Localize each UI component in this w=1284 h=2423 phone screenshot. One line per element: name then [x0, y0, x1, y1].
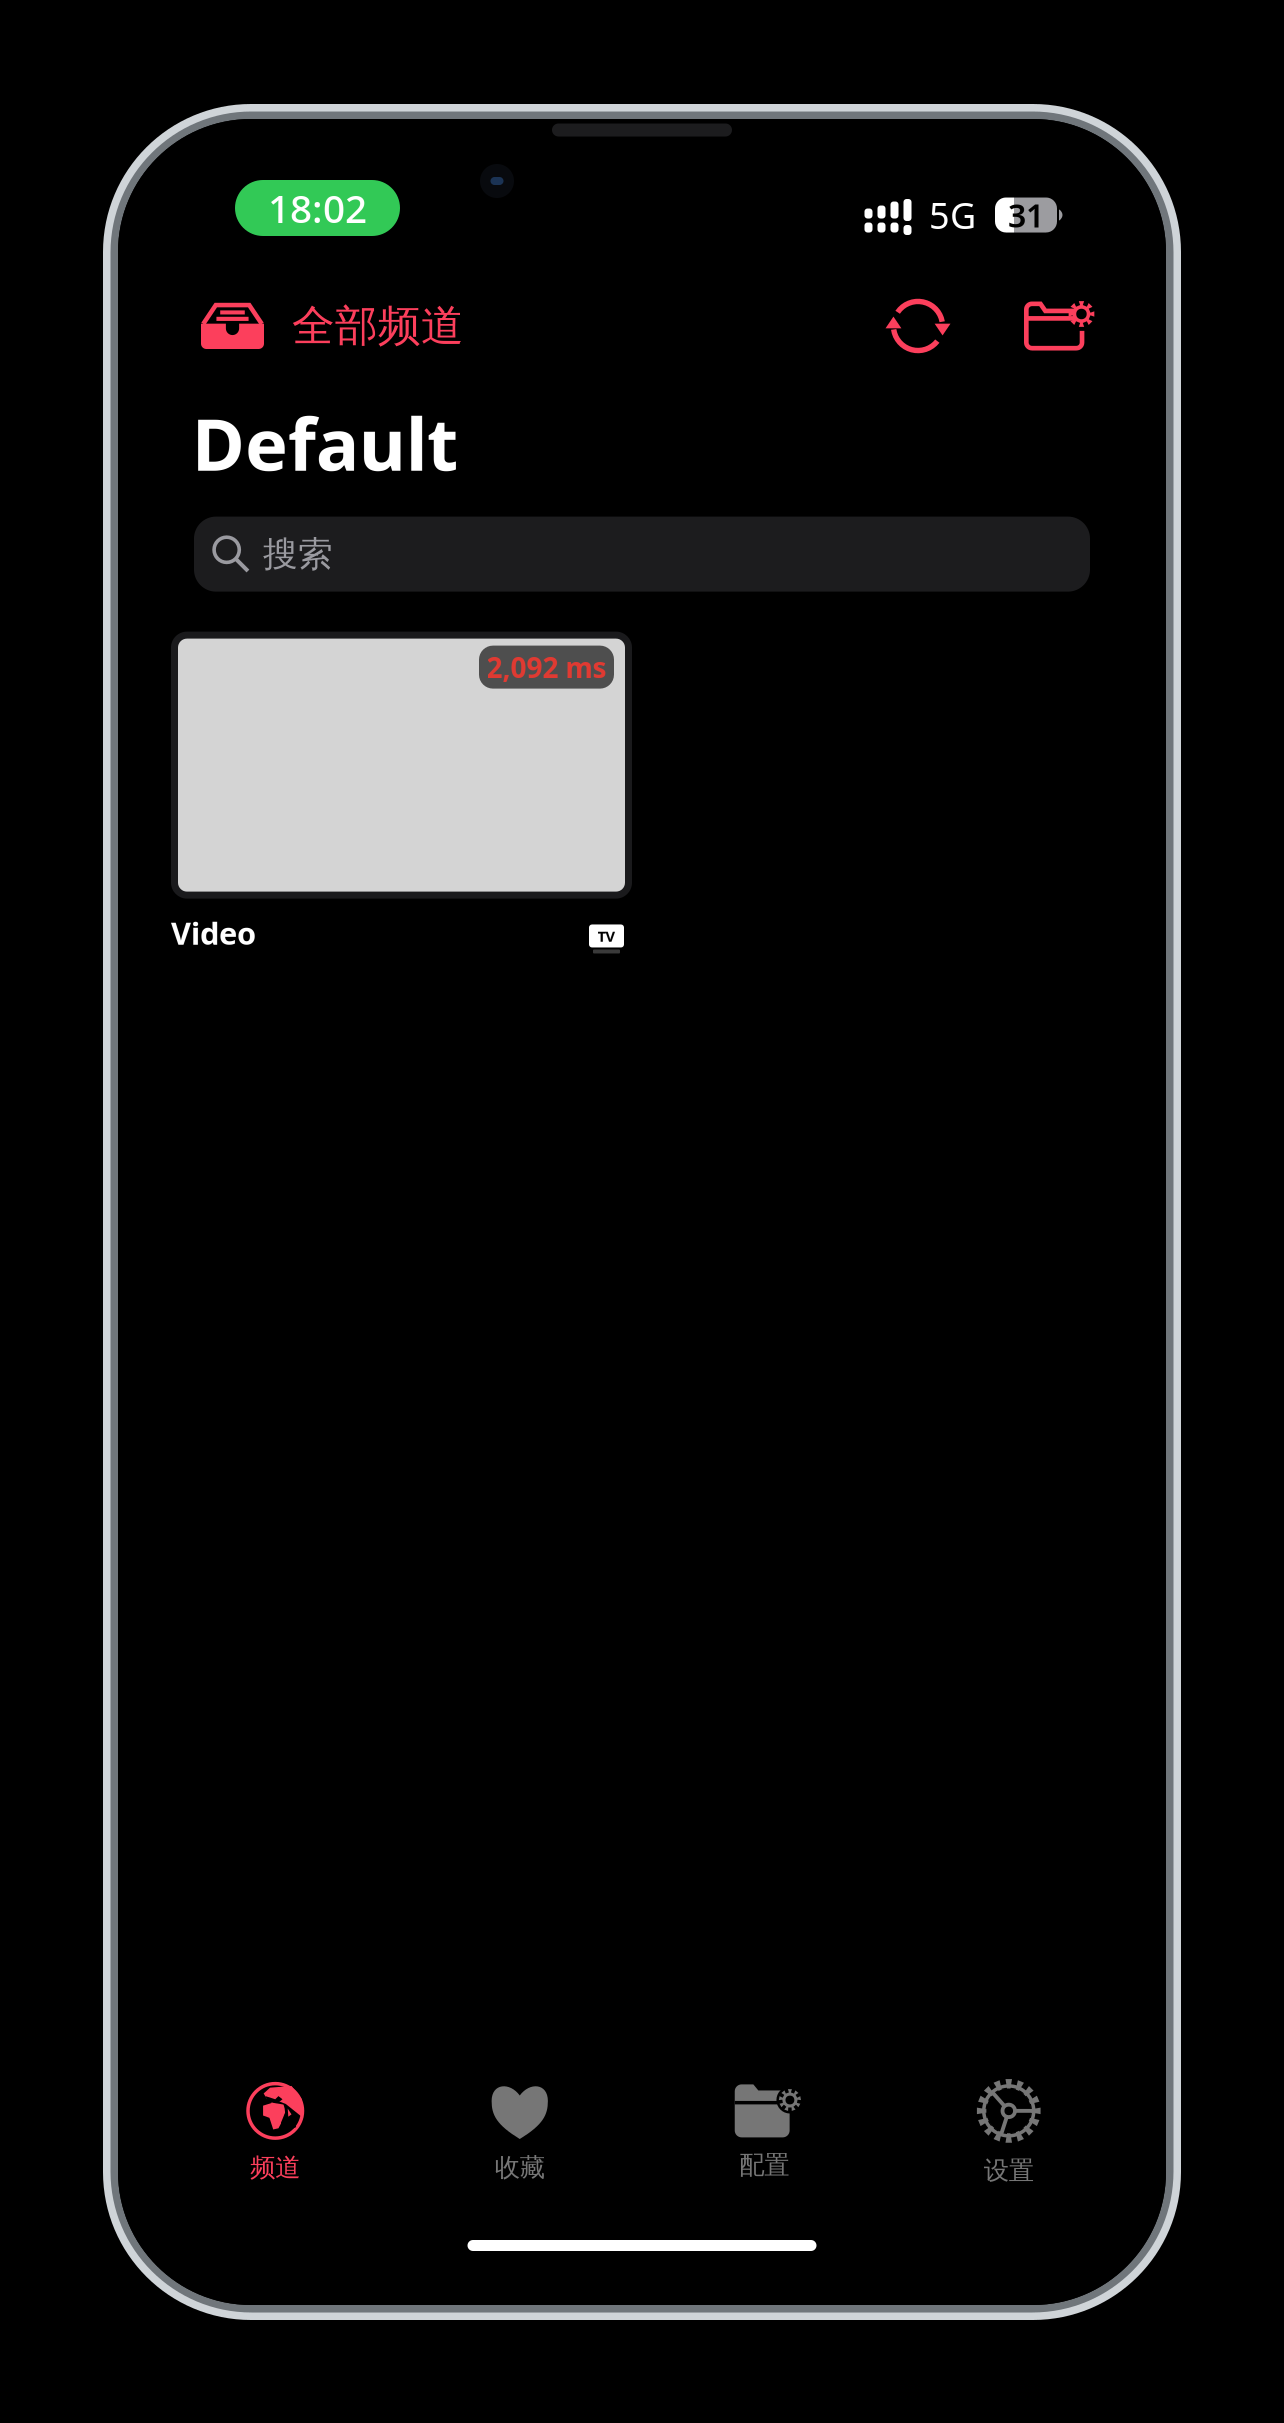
button[interactable]: 2,092 ms: [171, 632, 632, 953]
staticText: TV: [597, 926, 615, 946]
button[interactable]: Refresh: [885, 293, 951, 359]
staticText: 2,092 ms: [486, 648, 606, 686]
staticText: 全部频道: [292, 300, 464, 352]
staticText: Video: [171, 913, 256, 953]
button[interactable]: Manage configurations: [951, 301, 1094, 350]
staticText: 5G: [929, 191, 976, 239]
button[interactable]: 设置: [886, 2079, 1131, 2186]
staticText: 31: [1008, 194, 1044, 236]
staticText: 收藏: [495, 2152, 545, 2183]
button[interactable]: 全部频道: [201, 293, 464, 359]
staticText: Default: [192, 395, 458, 491]
button[interactable]: 搜索: [194, 517, 1090, 592]
button[interactable]: 收藏: [397, 2082, 642, 2183]
staticText: 频道: [250, 2152, 300, 2183]
button[interactable]: 频道: [153, 2082, 397, 2183]
staticText: 配置: [739, 2149, 789, 2180]
button[interactable]: 配置: [642, 2084, 886, 2180]
staticText: 设置: [984, 2155, 1034, 2186]
staticText: 搜索: [263, 533, 333, 575]
staticText: 18:02: [268, 182, 367, 234]
